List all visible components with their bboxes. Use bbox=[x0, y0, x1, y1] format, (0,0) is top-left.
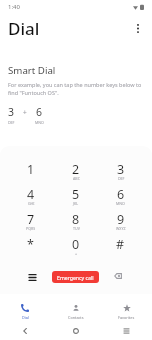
staticText: 2 bbox=[72, 161, 80, 178]
staticText: 3 bbox=[117, 161, 125, 178]
staticText: + bbox=[23, 108, 27, 117]
staticText: 8 bbox=[72, 211, 80, 228]
staticText: Emergency call bbox=[57, 274, 94, 281]
button[interactable]: Recents bbox=[101, 322, 152, 340]
staticText: find "Funtouch OS". bbox=[8, 89, 59, 96]
button[interactable]: Contacts bbox=[50, 296, 101, 320]
staticText: Dial bbox=[22, 315, 29, 320]
staticText: Favorites bbox=[118, 315, 135, 320]
button[interactable]: 9 bbox=[98, 211, 143, 236]
staticText: For example, you can tap the number keys… bbox=[8, 81, 142, 88]
staticText: DEF bbox=[118, 176, 125, 181]
button[interactable]: # bbox=[98, 236, 143, 261]
staticText: 0 bbox=[72, 236, 80, 253]
staticText: 6 bbox=[36, 105, 43, 119]
staticText: GHI bbox=[28, 201, 35, 206]
staticText: # bbox=[116, 236, 125, 253]
staticText: Contacts bbox=[68, 315, 84, 320]
staticText: WXYZ bbox=[116, 226, 126, 231]
button[interactable]: 4 bbox=[8, 186, 53, 211]
staticText: Dial bbox=[8, 17, 40, 40]
button[interactable]: Backspace bbox=[110, 268, 126, 284]
staticText: ABC bbox=[73, 176, 80, 181]
staticText: 6 bbox=[117, 186, 125, 203]
staticText: * bbox=[27, 236, 34, 253]
button[interactable]: 3 bbox=[98, 161, 143, 186]
staticText: 4 bbox=[27, 186, 35, 203]
button[interactable]: Favorites bbox=[101, 296, 152, 320]
staticText: DEF bbox=[8, 120, 15, 125]
staticText: 1 bbox=[27, 161, 35, 178]
staticText: + bbox=[75, 251, 78, 256]
button[interactable]: Back bbox=[0, 322, 50, 340]
staticText: 1:40 bbox=[8, 3, 20, 11]
staticText: 9 bbox=[117, 211, 125, 228]
button[interactable]: Emergency call bbox=[52, 271, 99, 283]
staticText: PQRS bbox=[26, 226, 36, 231]
staticText: TUV bbox=[73, 226, 80, 231]
button[interactable]: * bbox=[8, 236, 53, 261]
staticText: MNO bbox=[35, 120, 44, 125]
button[interactable]: 0 bbox=[53, 236, 98, 261]
button[interactable]: Call log bbox=[24, 269, 40, 285]
button[interactable]: 1 bbox=[8, 161, 53, 186]
staticText: MNO bbox=[116, 201, 125, 206]
button[interactable]: 7 bbox=[8, 211, 53, 236]
staticText: Smart Dial bbox=[8, 64, 56, 77]
button[interactable]: 6 bbox=[98, 186, 143, 211]
staticText: JKL bbox=[73, 201, 79, 206]
button[interactable]: More options bbox=[129, 19, 147, 37]
staticText: 5 bbox=[72, 186, 80, 203]
button[interactable]: 2 bbox=[53, 161, 98, 186]
staticText: 7 bbox=[27, 211, 35, 228]
staticText: 3 bbox=[8, 105, 15, 119]
button[interactable]: 8 bbox=[53, 211, 98, 236]
button[interactable]: Home bbox=[50, 322, 101, 340]
button[interactable]: Dial bbox=[0, 296, 50, 320]
button[interactable]: 5 bbox=[53, 186, 98, 211]
